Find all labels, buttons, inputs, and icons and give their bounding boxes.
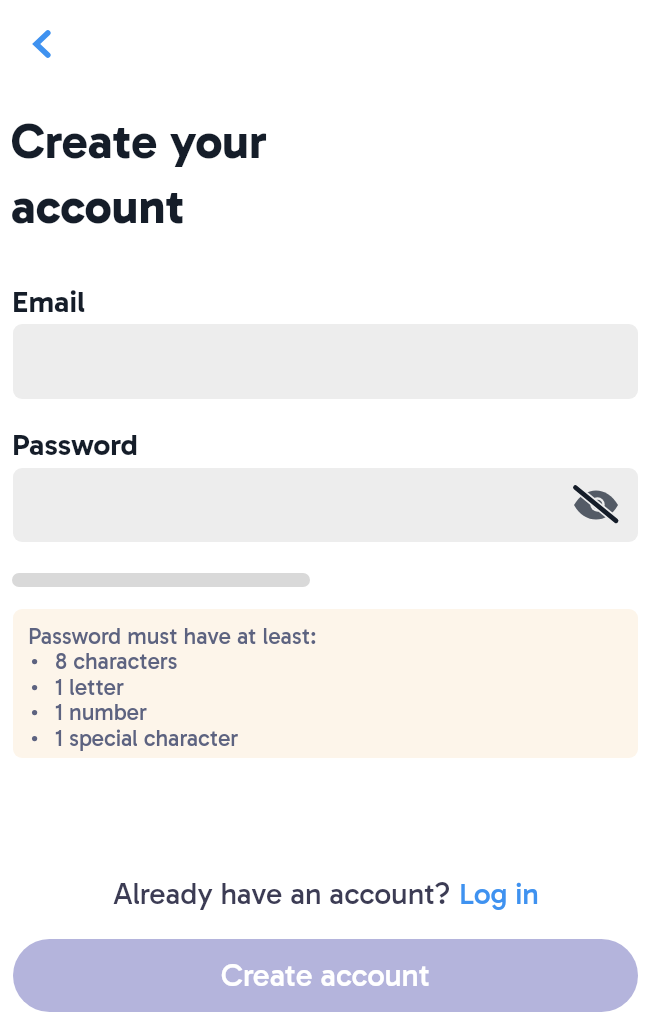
staticText: 8 characters [55, 647, 178, 675]
staticText: Log in [459, 876, 539, 912]
staticText: 1 letter [55, 673, 125, 701]
staticText: 1 special character [55, 724, 239, 752]
button[interactable]: Show password [562, 471, 630, 539]
button[interactable]: Log in [459, 876, 539, 912]
button[interactable]: Create account [13, 939, 638, 1012]
button[interactable]: Back [14, 16, 70, 72]
staticText: Already have an account? [113, 876, 459, 912]
staticText: 1 number [55, 698, 147, 726]
staticText: Password must have at least: [28, 622, 317, 650]
staticText: Create your account [11, 112, 267, 236]
staticText: Create account [221, 957, 430, 994]
staticText: Password [12, 426, 138, 463]
button[interactable]: Show password [13, 468, 638, 542]
staticText: Email [12, 283, 86, 320]
